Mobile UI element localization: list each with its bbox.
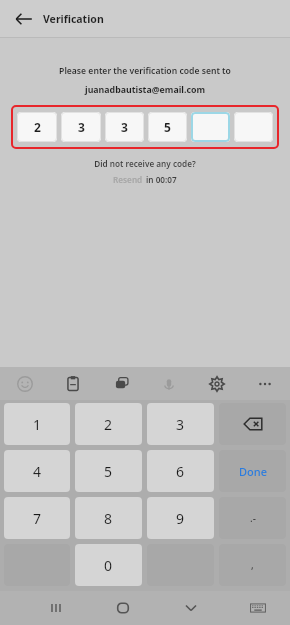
button[interactable]: .- (219, 497, 286, 539)
button[interactable]: Settings (206, 373, 228, 395)
staticText: Did not receive any code? (0, 158, 290, 169)
staticText: 9 (176, 509, 185, 528)
button[interactable] (191, 112, 230, 142)
button[interactable]: Recent apps (44, 596, 68, 620)
staticText: .- (250, 511, 256, 525)
button[interactable]: 3 (105, 112, 144, 142)
button[interactable]: 9 (147, 497, 214, 539)
button[interactable]: Resend (113, 174, 143, 185)
staticText: Verification (43, 12, 104, 26)
staticText: 5 (164, 119, 171, 135)
button[interactable]: 6 (147, 450, 214, 492)
button[interactable]: Home (111, 596, 135, 620)
staticText: Please enter the verification code sent … (0, 65, 290, 77)
button[interactable]: 5 (148, 112, 187, 142)
button[interactable]: Back (11, 6, 37, 32)
staticText: juanadbautista@email.com (0, 84, 290, 96)
staticText: 2 (34, 119, 41, 135)
button[interactable]: Hide keyboard (179, 596, 203, 620)
staticText: 8 (104, 509, 113, 528)
button[interactable]: 4 (4, 450, 70, 492)
staticText: 6 (176, 462, 185, 481)
button[interactable]: 3 (147, 403, 214, 445)
staticText: 7 (33, 509, 42, 528)
staticText: 4 (33, 462, 42, 481)
button[interactable]: Backspace (219, 403, 286, 445)
staticText: Resend (113, 174, 143, 185)
button[interactable]: Stickers (110, 373, 132, 395)
staticText: 1 (33, 415, 42, 434)
button[interactable]: 3 (61, 112, 101, 142)
staticText: , (251, 558, 254, 572)
button[interactable]: 2 (17, 112, 57, 142)
button[interactable]: 8 (75, 497, 142, 539)
button[interactable]: Clipboard (62, 373, 84, 395)
staticText: 3 (121, 119, 128, 135)
button[interactable]: Switch keyboard (246, 596, 270, 620)
button[interactable]: Emoji (14, 373, 36, 395)
button[interactable]: Voice input (158, 373, 180, 395)
button[interactable]: 0 (75, 544, 142, 586)
button[interactable]: 7 (4, 497, 70, 539)
button[interactable]: Done (219, 450, 286, 492)
staticText: 0 (104, 556, 113, 575)
button[interactable]: More options (254, 373, 276, 395)
staticText: Done (239, 464, 267, 479)
staticText: 3 (176, 415, 185, 434)
staticText: 5 (104, 462, 113, 481)
staticText: 3 (78, 119, 85, 135)
button[interactable]: 1 (4, 403, 70, 445)
staticText: 2 (104, 415, 113, 434)
staticText: in 00:07 (146, 174, 177, 185)
button[interactable]: 5 (75, 450, 142, 492)
button[interactable] (234, 112, 273, 142)
button[interactable]: 2 (75, 403, 142, 445)
